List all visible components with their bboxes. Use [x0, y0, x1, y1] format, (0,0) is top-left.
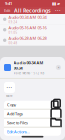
staticText: Audio 00-34 AM 00-34 — [13, 60, 43, 71]
staticText: ••• — [55, 8, 61, 13]
button[interactable]: Close — [56, 65, 61, 70]
staticText: Edit Actions… — [7, 129, 30, 134]
staticText: Audio 00-34 AM 00-34 — [8, 14, 46, 20]
staticText: Edit — [4, 8, 10, 13]
staticText: More — [6, 94, 13, 98]
button[interactable]: Add Tags — [4, 110, 61, 118]
staticText: Voice Memo · 512 KB — [13, 71, 44, 75]
staticText: 00:48 — [8, 41, 17, 45]
staticText: Copy — [7, 102, 16, 107]
staticText: 01:05 — [8, 31, 17, 34]
staticText: 03:24 — [8, 20, 17, 24]
staticText: All Recordings — [14, 7, 51, 14]
staticText: 9:41 — [5, 1, 12, 6]
staticText: ••• — [6, 85, 12, 90]
staticText: ▮▮ ▰ — [52, 1, 60, 6]
button[interactable]: Save to Files — [4, 119, 61, 127]
staticText: Add Tags — [7, 111, 23, 116]
button[interactable]: Copy — [4, 101, 61, 109]
staticText: ✕ — [57, 66, 59, 69]
staticText: Audio 05-16 AM 05-16 — [8, 25, 46, 30]
button[interactable]: ••• — [4, 82, 15, 98]
staticText: Audio 06-28 AM 06-28 — [8, 35, 46, 41]
button[interactable]: Edit Actions… — [4, 128, 61, 136]
staticText: Save to Files — [7, 120, 28, 125]
